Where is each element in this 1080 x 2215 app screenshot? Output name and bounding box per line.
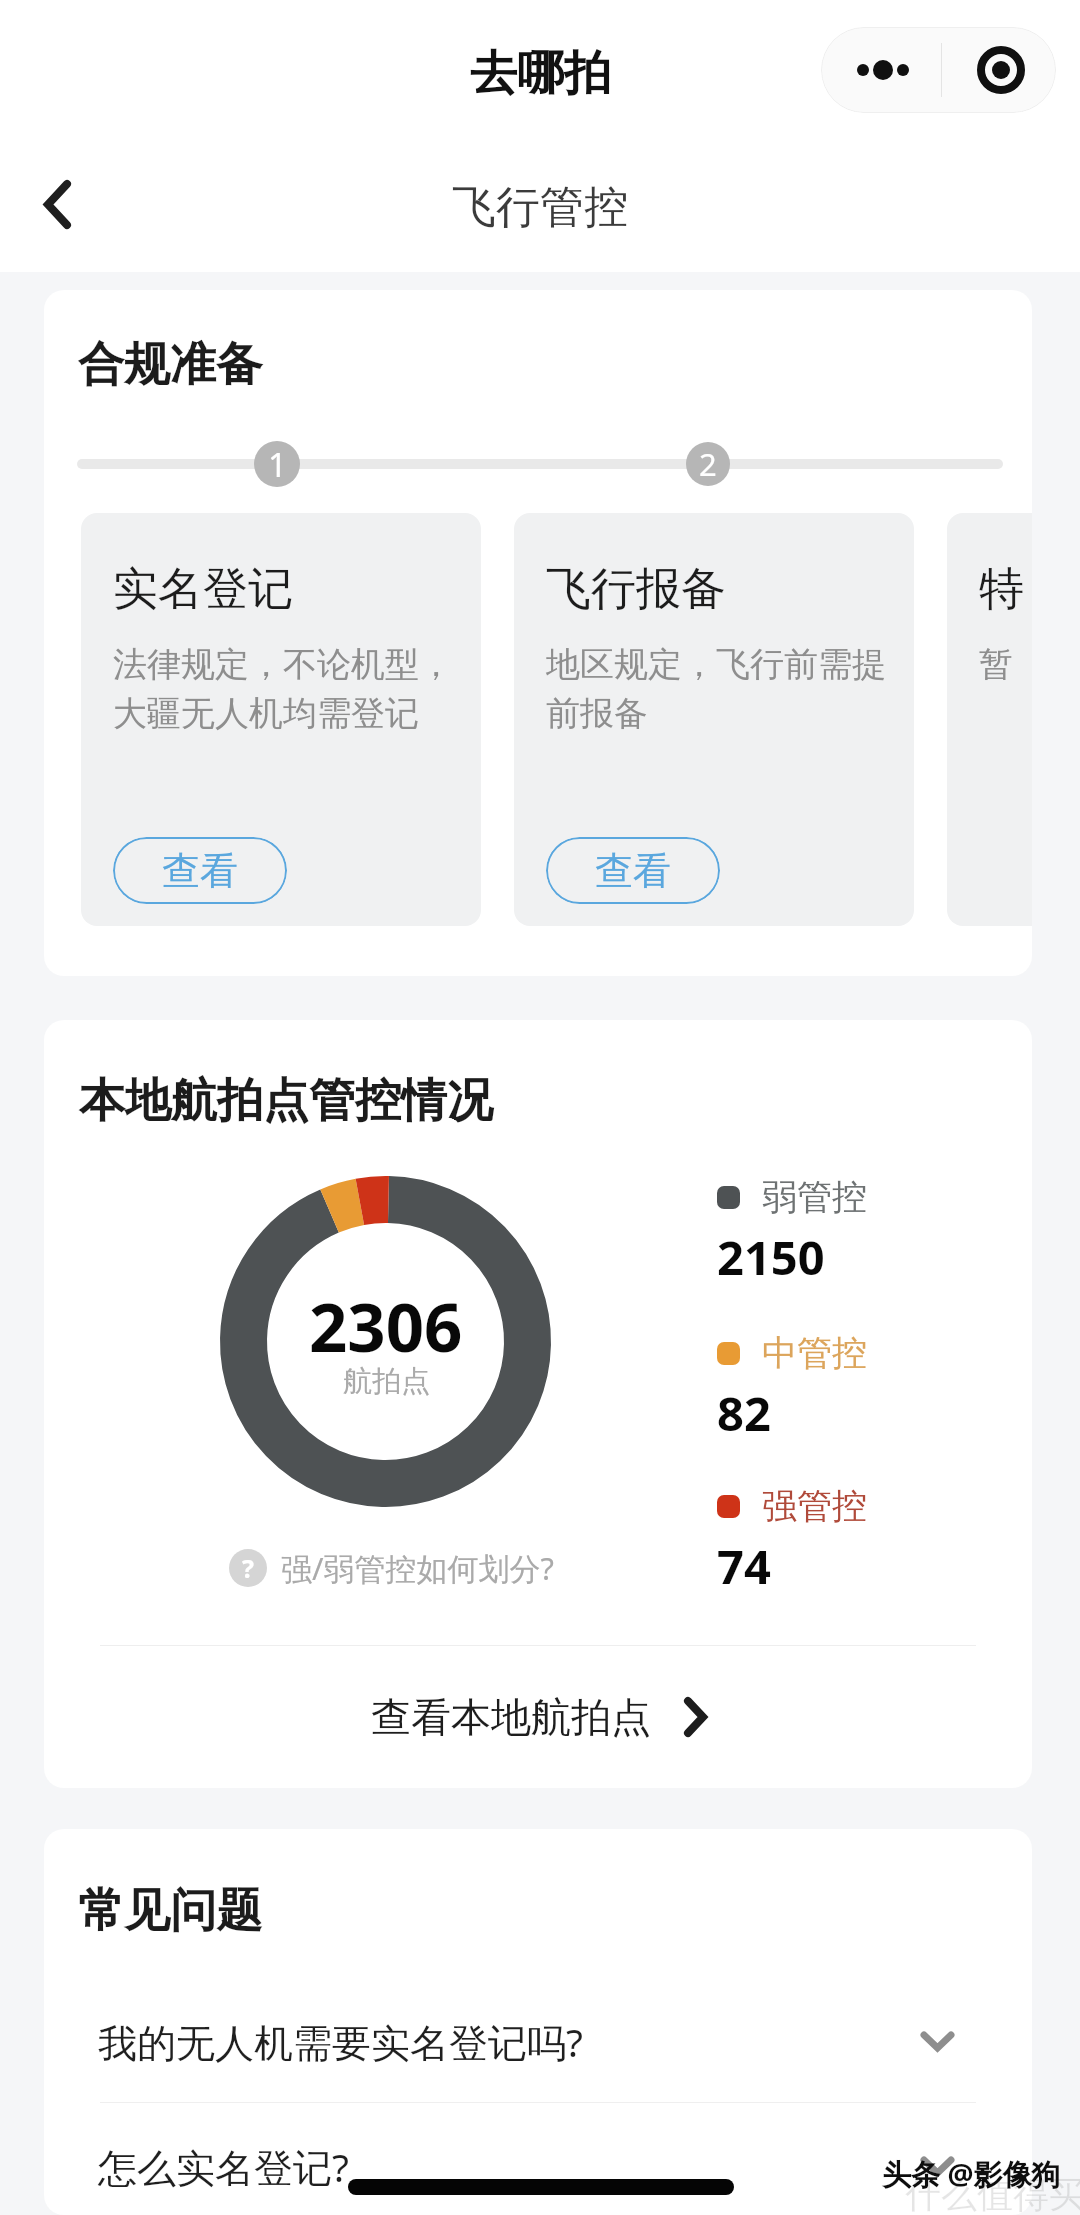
button[interactable]: ? [229,1547,554,1589]
staticText: 实名登记 [113,561,453,618]
staticText: ? [242,1551,254,1585]
staticText: 弱管控 [762,1175,867,1219]
staticText: 中管控 [762,1331,867,1375]
button[interactable]: 特殊区域 [947,513,1032,926]
button[interactable]: 实名登记 [81,513,481,926]
staticText: 强/弱管控如何划分? [281,1547,554,1589]
staticText: 什么值得买 [905,2172,1080,2215]
button[interactable]: Close mini program [942,27,1056,113]
staticText: 头条 @影像狗 [882,2154,1061,2194]
staticText: 查看 [595,847,671,895]
staticText: 查看本地航拍点 [371,1692,651,1742]
button[interactable]: 怎么实名登记? [44,2107,1032,2215]
staticText: 2306 [309,1280,463,1371]
staticText: 怎么实名登记? [98,2140,349,2193]
button[interactable]: 查看本地航拍点 [44,1646,1032,1788]
button[interactable]: 飞行报备 [514,513,914,926]
staticText: 飞行报备 [546,561,886,618]
button[interactable]: Back [7,154,107,254]
staticText: 常见问题 [78,1882,262,1940]
staticText: 特殊区域 [979,561,1023,618]
button[interactable]: 我的无人机需要实名登记吗? [44,1982,1032,2100]
staticText: 本地航拍点管控情况 [79,1072,493,1130]
staticText: 强管控 [762,1484,867,1528]
staticText: 航拍点 [343,1363,430,1400]
button[interactable]: 查看 [546,837,720,904]
staticText: 飞行管控 [452,180,628,235]
staticText: 我的无人机需要实名登记吗? [98,2015,583,2068]
staticText: 法律规定，不论机型，大疆无人机均需登记 [113,643,453,735]
staticText: 1 [268,442,287,487]
button[interactable]: 查看 [113,837,287,904]
staticText: 合规准备 [78,336,262,394]
staticText: 去哪拍 [470,44,611,103]
staticText: 74 [717,1534,771,1598]
staticText: 2150 [717,1225,825,1289]
staticText: 2 [699,443,717,485]
staticText: 查看 [162,847,238,895]
staticText: 暂时禁止飞行的管制区域 [979,643,1023,686]
staticText: 82 [717,1381,771,1445]
button[interactable]: More options [821,27,941,113]
staticText: 地区规定，飞行前需提前报备 [546,643,886,735]
